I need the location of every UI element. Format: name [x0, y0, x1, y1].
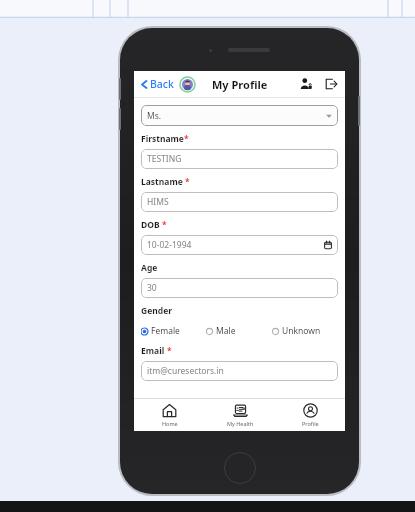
staticText: My Health [227, 420, 254, 427]
staticText: HIMS [147, 196, 169, 208]
staticText: * [167, 345, 172, 357]
staticText: * [185, 176, 190, 188]
staticText: 10-02-1994 [147, 239, 192, 251]
staticText: Home [162, 420, 178, 427]
staticText: Age [141, 262, 158, 274]
staticText: Ms. [147, 110, 162, 122]
button[interactable]: Home [134, 399, 205, 431]
button[interactable]: My Health [205, 399, 275, 431]
staticText: Email [141, 345, 165, 357]
staticText: Lastname [141, 176, 183, 188]
button[interactable]: TESTING [141, 149, 338, 169]
button[interactable]: Account security [298, 76, 314, 92]
staticText: Back [150, 77, 174, 91]
staticText: 30 [147, 282, 157, 294]
staticText: Female [151, 325, 180, 337]
staticText: itm@curesectors.in [147, 365, 224, 377]
staticText: * [184, 133, 189, 145]
staticText: Unknown [282, 325, 321, 337]
button[interactable]: 30 [141, 278, 338, 298]
button[interactable]: Male [206, 324, 272, 338]
staticText: Male [216, 325, 236, 337]
button[interactable]: Back [138, 75, 176, 93]
button[interactable]: 10-02-1994 [141, 235, 338, 255]
button[interactable]: Log out [323, 76, 339, 92]
staticText: My Profile [212, 77, 268, 92]
button[interactable]: HIMS [141, 192, 338, 212]
button[interactable]: Profile [275, 399, 345, 431]
button[interactable]: Unknown [272, 324, 338, 338]
button[interactable]: Ms. [141, 105, 338, 126]
button[interactable]: Profile photo [180, 77, 195, 92]
staticText: Gender [141, 305, 172, 317]
staticText: * [162, 219, 167, 231]
button[interactable]: Female [141, 324, 206, 338]
staticText: Firstname [141, 133, 184, 145]
staticText: TESTING [147, 153, 182, 165]
staticText: Profile [302, 420, 319, 427]
button[interactable]: itm@curesectors.in [141, 361, 338, 381]
staticText: DOB [141, 219, 160, 231]
